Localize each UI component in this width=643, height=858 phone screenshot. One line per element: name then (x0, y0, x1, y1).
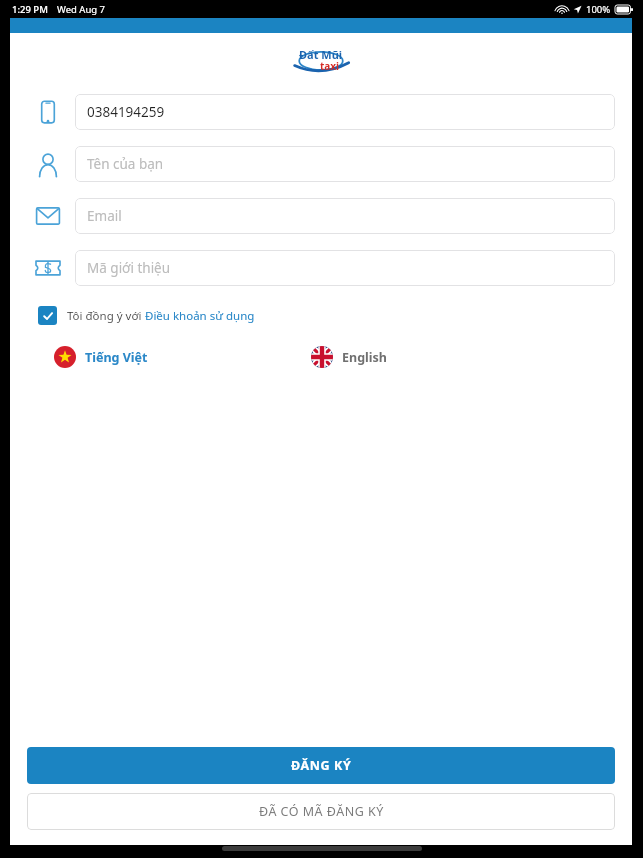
staticText: Tôi đồng ý với (67, 308, 145, 324)
staticText: Điều khoản sử dụng (145, 308, 255, 324)
button[interactable]: Tôi đồng ý với (36, 303, 257, 328)
staticText: Mã giới thiệu (87, 259, 171, 277)
staticText: Tiếng Việt (85, 349, 148, 366)
other: Referral code (33, 253, 63, 283)
staticText: ĐĂNG KÝ (291, 757, 352, 774)
staticText: Email (87, 207, 122, 225)
button[interactable]: English (307, 342, 391, 372)
button[interactable]: Mã giới thiệu (75, 250, 615, 286)
other: Email (33, 201, 63, 231)
staticText: Wed Aug 7 (57, 3, 106, 16)
staticText: Đất Mũi (299, 47, 343, 62)
button[interactable]: ĐÃ CÓ MÃ ĐĂNG KÝ (27, 793, 615, 830)
staticText: 1:29 PM (12, 3, 48, 16)
staticText: 0384194259 (87, 103, 165, 121)
button[interactable]: ĐĂNG KÝ (27, 747, 615, 784)
button[interactable]: Email (75, 198, 615, 234)
other: Your name (33, 149, 63, 179)
staticText: Tên của bạn (87, 155, 164, 173)
button[interactable]: 0384194259 (75, 94, 615, 130)
button[interactable]: Tên của bạn (75, 146, 615, 182)
staticText: English (342, 349, 387, 366)
button[interactable]: Tiếng Việt (50, 342, 152, 372)
other: Phone number (33, 97, 63, 127)
staticText: ĐÃ CÓ MÃ ĐĂNG KÝ (259, 803, 384, 820)
staticText: taxi (320, 59, 340, 73)
staticText: 100% (586, 3, 611, 16)
